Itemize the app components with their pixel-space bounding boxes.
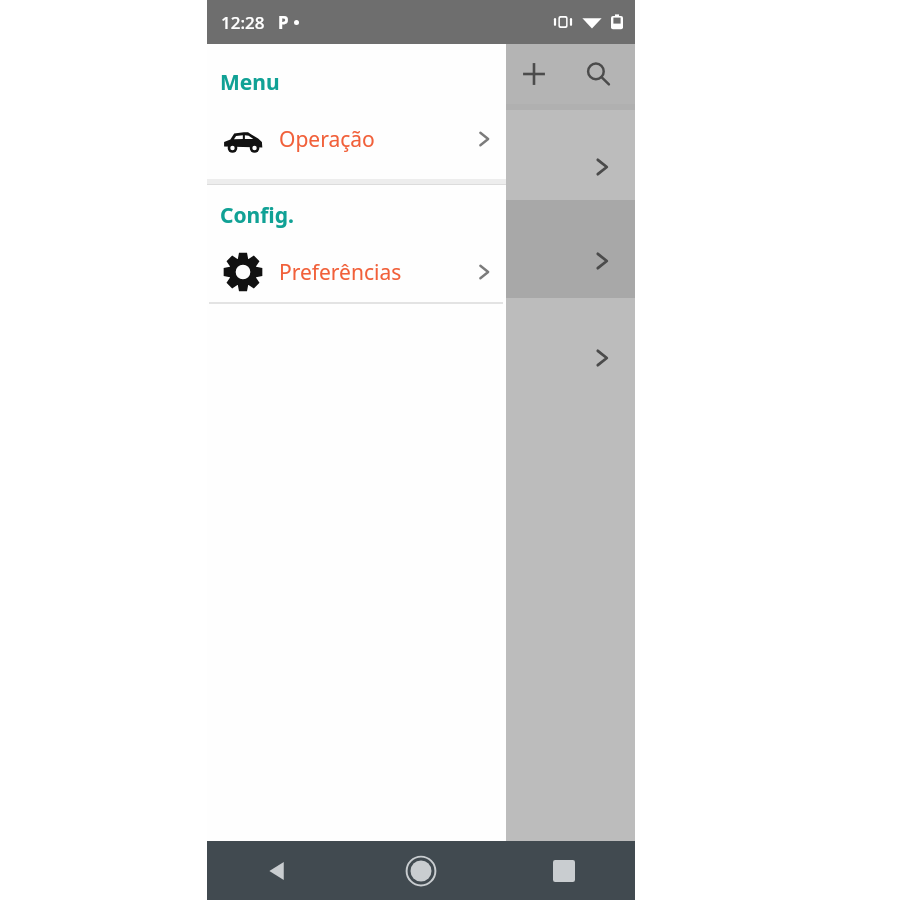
button[interactable]: PINT… — [207, 200, 635, 298]
button[interactable]: Operação — [207, 109, 506, 169]
staticText: PINT… — [207, 216, 279, 249]
button[interactable] — [207, 110, 635, 200]
button[interactable]: Home — [349, 841, 492, 900]
button[interactable]: ang — [207, 298, 635, 394]
staticText: Operação — [279, 125, 375, 154]
button[interactable]: Preferências — [207, 242, 506, 302]
button[interactable]: Back — [207, 841, 349, 900]
staticText: Config. — [220, 201, 294, 230]
staticText: P — [278, 11, 289, 34]
staticText: 12:28 — [221, 11, 265, 34]
button[interactable]: Recents — [492, 841, 635, 900]
staticText: Preferências — [279, 258, 402, 287]
button[interactable]: Search — [575, 51, 621, 97]
button[interactable]: Add — [511, 51, 557, 97]
staticText: Menu — [220, 68, 280, 97]
